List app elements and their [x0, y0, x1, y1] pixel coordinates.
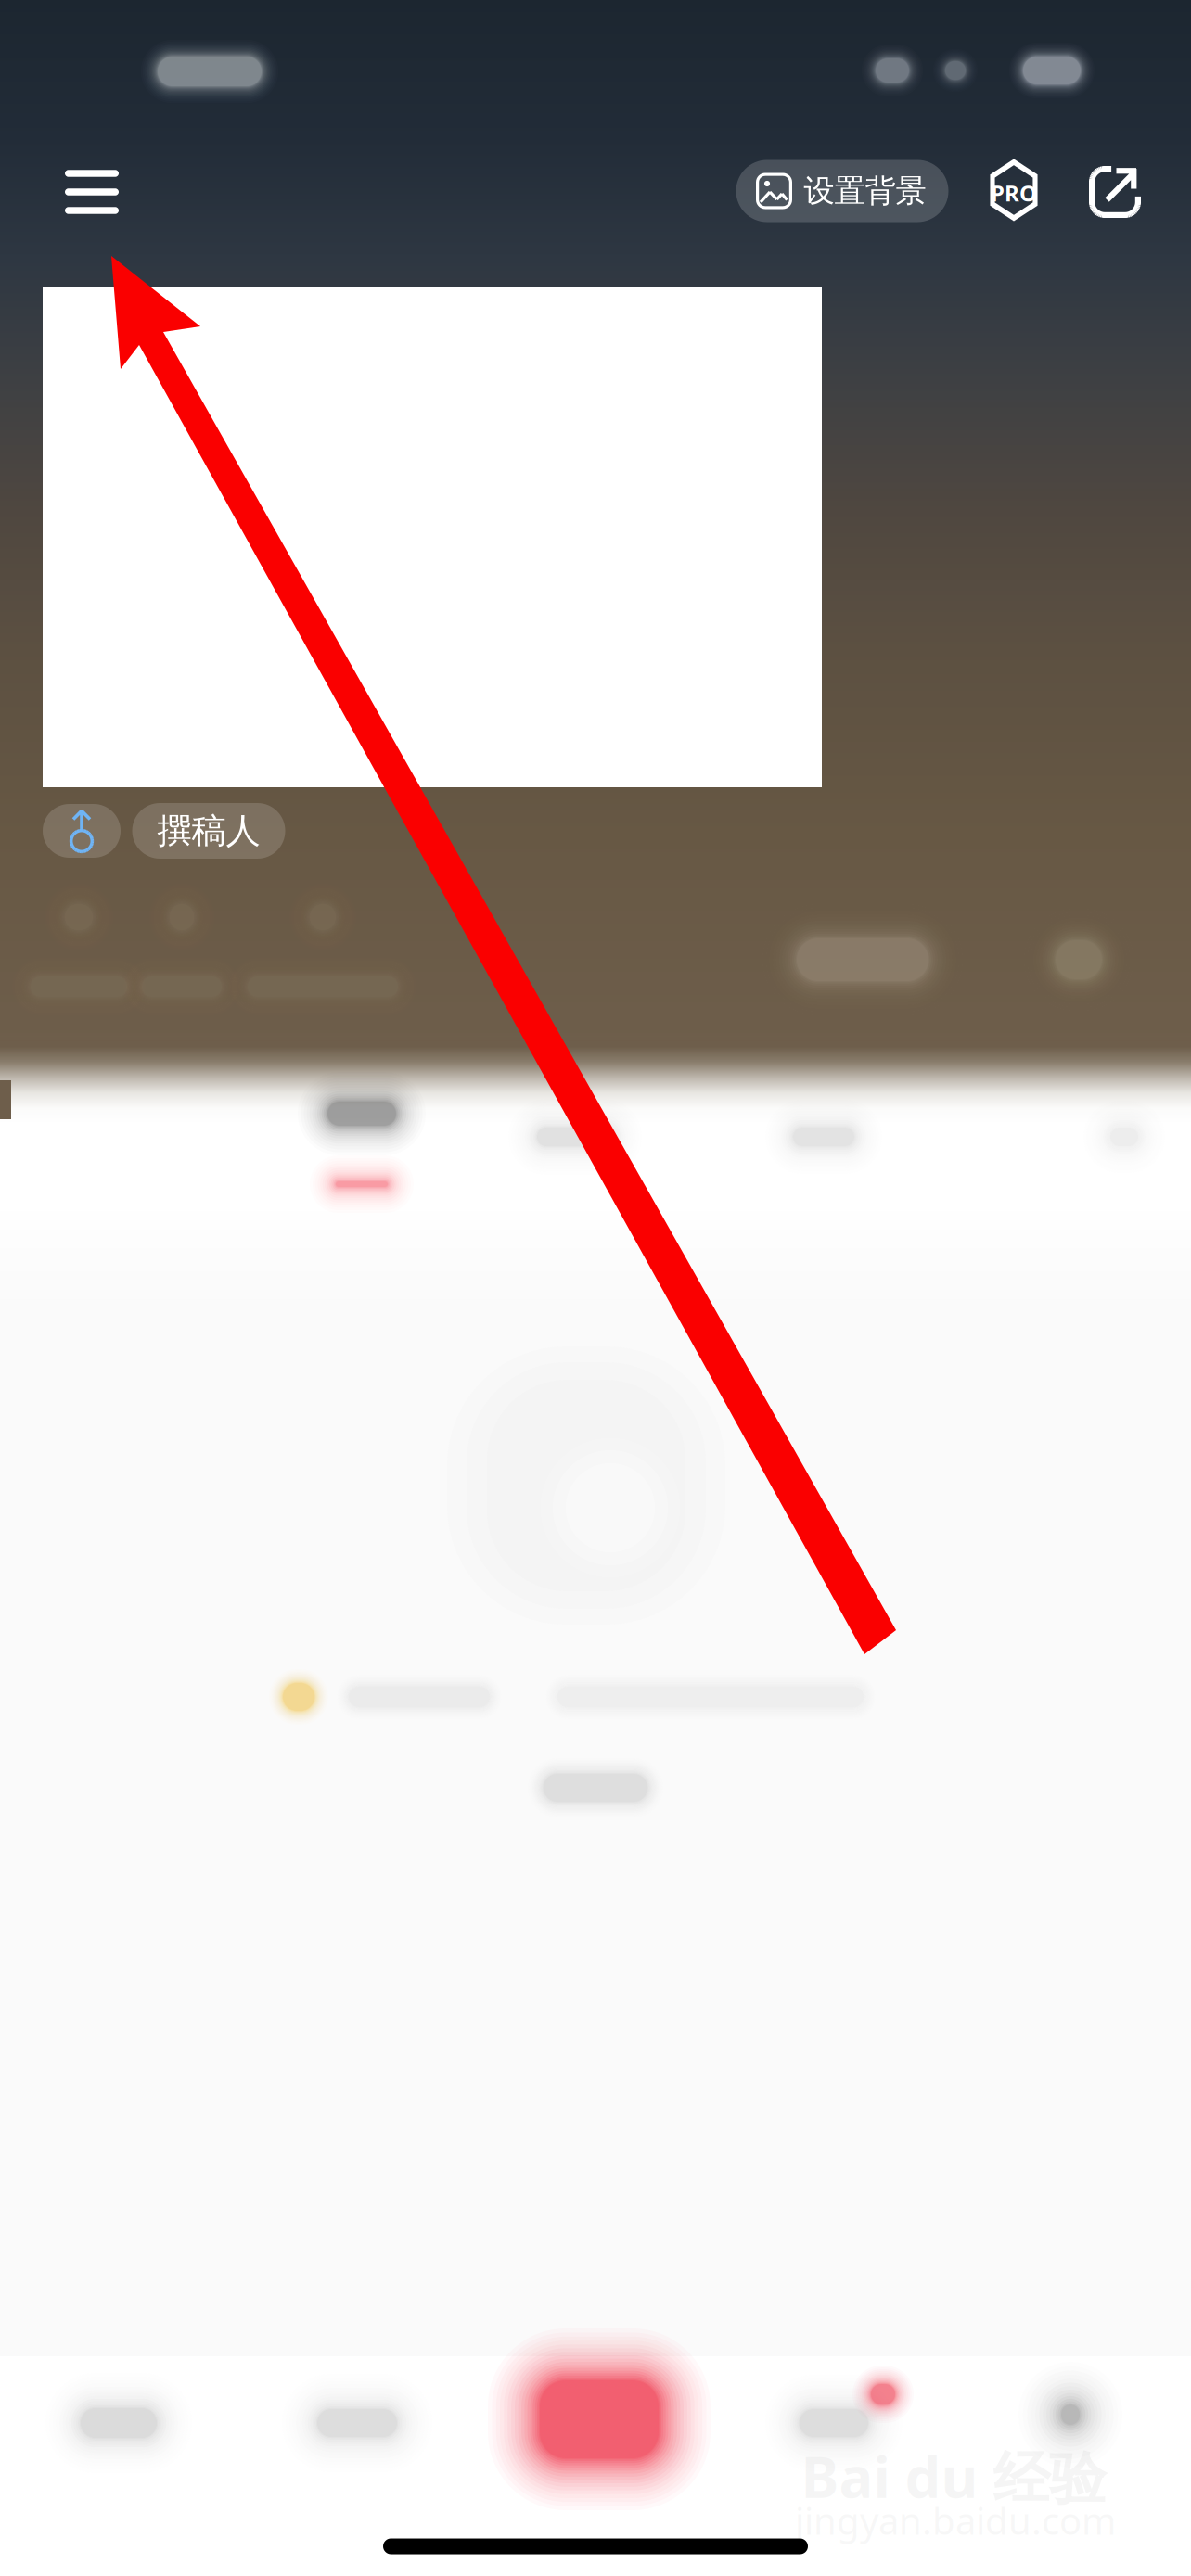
- staticText: Bai du 经验: [801, 2438, 1106, 2514]
- button[interactable]: 撰稿人: [132, 803, 285, 859]
- button[interactable]: 设置背景: [736, 160, 948, 222]
- button[interactable]: Follow: [762, 904, 963, 1015]
- button[interactable]: 发现: [241, 2353, 473, 2493]
- staticText: jingyan.baidu.com: [795, 2496, 1116, 2545]
- button[interactable]: 发布: [483, 2327, 715, 2512]
- button[interactable]: 首页: [3, 2353, 235, 2493]
- button[interactable]: Tab 4: [1083, 1101, 1165, 1173]
- button[interactable]: Pro subscription: [985, 159, 1043, 225]
- button[interactable]: Tab 3: [765, 1100, 882, 1174]
- button[interactable]: Tab 2: [508, 1099, 642, 1175]
- button[interactable]: 我的: [954, 2345, 1186, 2484]
- button[interactable]: More: [1024, 909, 1133, 1011]
- staticText: 设置背景: [804, 172, 926, 210]
- staticText: 撰稿人: [157, 810, 260, 852]
- button[interactable]: Tab 1: [298, 1072, 426, 1213]
- button[interactable]: Share: [1089, 166, 1141, 218]
- button[interactable]: Menu: [39, 149, 145, 235]
- staticText: PRO: [991, 178, 1037, 208]
- button[interactable]: 消息: [718, 2353, 950, 2493]
- button[interactable]: Create: [528, 1758, 663, 1817]
- button[interactable]: Author: [43, 804, 121, 858]
